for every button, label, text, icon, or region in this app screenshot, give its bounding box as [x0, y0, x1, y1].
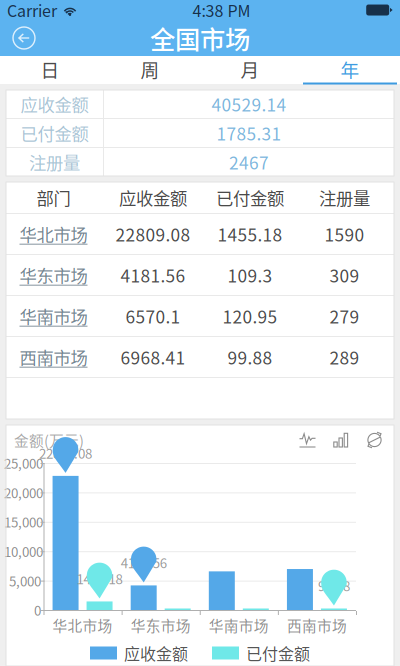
staticText: 注册量 — [319, 185, 370, 210]
button[interactable]: Bar chart — [333, 431, 349, 448]
staticText: 120.95 — [222, 303, 277, 329]
staticText: 6968.41 — [120, 344, 185, 370]
staticText: 华南市场 — [19, 303, 87, 329]
staticText: 华东市场 — [19, 262, 87, 288]
button[interactable]: 华东市场 — [6, 255, 101, 295]
staticText: 已付金额 — [246, 641, 310, 665]
button[interactable]: Line chart — [299, 431, 316, 448]
staticText: 全国市场 — [150, 20, 250, 56]
button[interactable]: 年 — [300, 56, 400, 84]
staticText: 部门 — [36, 185, 70, 210]
staticText: 22809.08 — [115, 221, 190, 247]
button[interactable]: 周 — [100, 56, 200, 84]
staticText: 应收金额 — [124, 641, 188, 665]
button[interactable]: 华南市场 — [6, 296, 101, 336]
staticText: 应收金额 — [119, 185, 187, 210]
staticText: 4181.56 — [120, 262, 185, 288]
staticText: 6570.1 — [125, 303, 180, 329]
button[interactable]: 西南市场 — [6, 337, 101, 377]
staticText: 289 — [329, 344, 359, 370]
staticText: 应收金额 — [20, 91, 88, 117]
staticText: 已付金额 — [20, 120, 88, 146]
staticText: 109.3 — [227, 262, 272, 288]
staticText: 10,000 — [4, 541, 43, 561]
staticText: 1455.18 — [217, 221, 282, 247]
staticText: 15,000 — [4, 512, 43, 531]
staticText: 1455.18 — [77, 569, 123, 588]
button[interactable]: Back — [0, 20, 46, 56]
button[interactable]: Refresh — [366, 431, 383, 448]
staticText: 5,000 — [9, 571, 41, 590]
staticText: 周 — [140, 55, 159, 82]
button[interactable]: 华北市场 — [6, 214, 101, 254]
staticText: 已付金额 — [216, 185, 284, 210]
staticText: 25,000 — [4, 453, 43, 473]
button[interactable]: 月 — [200, 56, 300, 84]
staticText: 2467 — [229, 149, 269, 175]
staticText: 279 — [329, 303, 359, 329]
staticText: 40529.14 — [211, 91, 286, 117]
staticText: 西南市场 — [287, 614, 347, 636]
staticText: 西南市场 — [19, 344, 87, 370]
staticText: 99.88 — [318, 576, 350, 595]
staticText: 日 — [40, 55, 59, 82]
staticText: Carrier — [7, 0, 57, 22]
staticText: 4181.56 — [121, 553, 167, 572]
staticText: 华东市场 — [131, 614, 191, 636]
staticText: 99.88 — [227, 344, 272, 370]
staticText: 华南市场 — [209, 614, 269, 636]
button[interactable]: 日 — [0, 56, 100, 84]
staticText: 年 — [340, 55, 359, 82]
staticText: 1590 — [324, 221, 364, 247]
staticText: 22809.08 — [39, 443, 92, 462]
staticText: 1785.31 — [216, 120, 281, 146]
staticText: 309 — [329, 262, 359, 288]
staticText: 20,000 — [4, 483, 43, 502]
staticText: 注册量 — [29, 149, 80, 175]
staticText: 4:38 PM — [193, 0, 251, 22]
staticText: 月 — [240, 55, 259, 82]
staticText: 金额(万元) — [14, 429, 84, 451]
staticText: 0 — [34, 600, 41, 620]
staticText: 华北市场 — [53, 614, 113, 636]
staticText: 华北市场 — [19, 221, 87, 247]
